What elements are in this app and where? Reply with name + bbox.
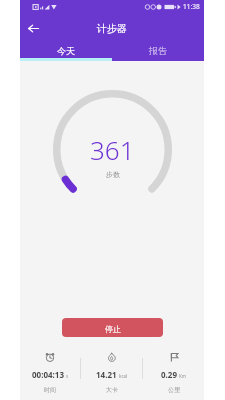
- staticText: kcal: [119, 373, 128, 379]
- staticText: 时间: [44, 386, 56, 394]
- button[interactable]: Back: [23, 18, 43, 38]
- staticText: 停止: [105, 324, 121, 334]
- staticText: 公里: [168, 386, 180, 394]
- staticText: 14.21: [96, 369, 117, 380]
- staticText: 大卡: [106, 386, 118, 394]
- staticText: 今天: [57, 45, 75, 56]
- staticText: 00:04:13: [32, 369, 64, 380]
- staticText: 11:38: [183, 2, 200, 11]
- button[interactable]: 今天: [20, 43, 112, 61]
- staticText: 361: [90, 132, 135, 167]
- staticText: 步数: [106, 170, 120, 179]
- staticText: 0.29: [161, 369, 177, 380]
- staticText: s: [66, 373, 69, 379]
- staticText: 报告: [149, 45, 167, 56]
- staticText: 计步器: [97, 22, 127, 35]
- staticText: Km: [179, 373, 186, 379]
- button[interactable]: 报告: [112, 43, 204, 61]
- button[interactable]: 停止: [62, 318, 163, 337]
